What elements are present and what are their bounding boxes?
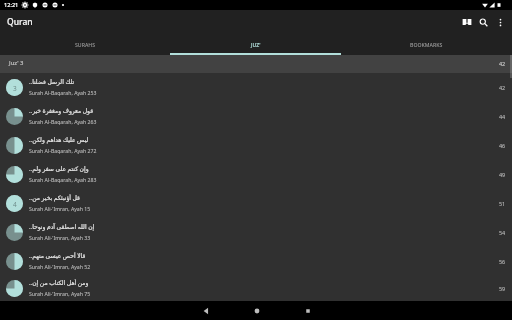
staticText: 44 [499,113,506,120]
staticText: 46 [499,142,506,149]
staticText: Surah Al-Baqarah, Ayah 263 [29,118,97,125]
staticText: Surah Ali-'Imran, Ayah 75 [29,290,91,297]
staticText: SURAHS [75,41,96,48]
staticText: قل أؤنبئكم بخير من.. [29,194,80,202]
staticText: 51 [499,200,506,207]
button[interactable]: قالا أحص عيسى منهم.. [0,247,512,276]
staticText: 59 [499,285,506,292]
button[interactable]: SURAHS [0,34,170,55]
button[interactable]: Open book [458,10,475,34]
staticText: إن الله اصطفى آدم ونوحا.. [29,223,95,231]
button[interactable]: وإن كنتم على سفر ولم.. [0,160,512,189]
staticText: Surah Al-Baqarah, Ayah 283 [29,176,97,183]
staticText: Surah Ali-'Imran, Ayah 52 [29,263,91,270]
button[interactable]: ليس عليك هداهم ولكن.. [0,131,512,160]
button[interactable]: More options [492,10,509,34]
staticText: 54 [499,229,506,236]
staticText: Surah Al-Baqarah, Ayah 253 [29,89,97,96]
staticText: BOOKMARKS [410,41,443,48]
button[interactable]: Back [196,301,215,320]
staticText: Surah Ali-'Imran, Ayah 33 [29,234,91,241]
staticText: 4 [13,200,17,209]
button[interactable]: إن الله اصطفى آدم ونوحا.. [0,218,512,247]
button[interactable]: BOOKMARKS [341,34,512,55]
staticText: 49 [499,171,506,178]
staticText: قول معروف ومغفرة خير.. [29,107,94,115]
button[interactable]: Home [247,301,266,320]
staticText: Quran [7,16,33,28]
button[interactable]: Recent apps [298,301,317,320]
staticText: 42 [499,84,506,91]
staticText: ومن أهل الكتاب من إن.. [29,279,89,287]
button[interactable]: 3 [0,73,512,102]
staticText: 12:21 [4,1,19,9]
button[interactable]: Search [475,10,492,34]
button[interactable]: قول معروف ومغفرة خير.. [0,102,512,131]
staticText: Surah Al-Baqarah, Ayah 272 [29,147,97,154]
button[interactable]: JUZ' [170,34,341,55]
staticText: تلك الرسل فضلنا.. [29,78,75,86]
button[interactable]: ومن أهل الكتاب من إن.. [0,276,512,301]
staticText: ليس عليك هداهم ولكن.. [29,136,89,144]
button[interactable]: 4 [0,189,512,218]
staticText: 42 [499,60,506,67]
staticText: وإن كنتم على سفر ولم.. [29,165,89,173]
staticText: قالا أحص عيسى منهم.. [29,252,86,260]
staticText: Surah Ali-'Imran, Ayah 15 [29,205,91,212]
staticText: Juz' 3 [9,59,24,67]
staticText: JUZ' [251,41,261,48]
staticText: 56 [499,258,506,265]
staticText: 3 [13,84,17,93]
